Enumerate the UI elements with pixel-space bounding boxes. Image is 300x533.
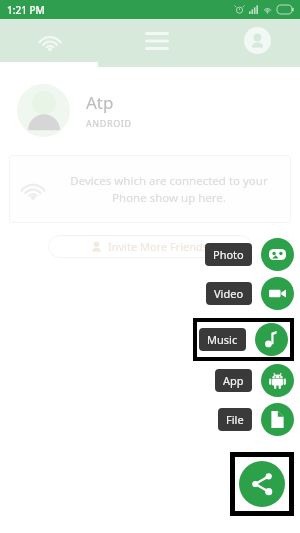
button[interactable]: File xyxy=(218,403,294,436)
button[interactable]: Profile xyxy=(214,19,300,62)
staticText: Video xyxy=(214,286,244,301)
staticText: 1:21 PM xyxy=(7,3,45,17)
staticText: Invite More Friends xyxy=(108,239,209,254)
staticText: Music xyxy=(207,332,238,347)
staticText: Photo xyxy=(213,247,244,262)
button[interactable]: Music xyxy=(199,323,288,356)
button[interactable]: App xyxy=(215,364,294,397)
button[interactable]: Connect WiFi xyxy=(0,19,100,62)
staticText: App xyxy=(223,373,244,388)
staticText: Devices which are connected to your Phon… xyxy=(57,173,281,205)
button[interactable]: Share xyxy=(239,461,285,507)
button[interactable]: Menu xyxy=(100,19,214,62)
button[interactable]: Devices which are connected to your Phon… xyxy=(9,155,291,223)
button[interactable]: Photo xyxy=(205,238,294,271)
button[interactable]: Video xyxy=(206,277,294,310)
staticText: ANDROID xyxy=(86,117,132,129)
button[interactable]: Invite More Friends xyxy=(48,235,252,258)
staticText: Atp xyxy=(86,91,114,114)
staticText: File xyxy=(226,412,244,427)
button[interactable]: Atp xyxy=(0,73,300,147)
